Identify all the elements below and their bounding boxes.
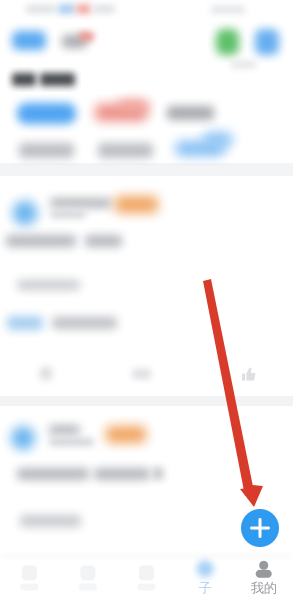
button[interactable]: Messages (59, 556, 117, 600)
button[interactable]: Compose (241, 509, 279, 547)
staticText: 我的 (251, 580, 277, 596)
button[interactable]: Home (0, 556, 59, 600)
button[interactable]: 子 (176, 556, 234, 600)
staticText: 子 (199, 580, 212, 596)
button[interactable]: Notifications (117, 556, 176, 600)
button[interactable]: 我的 (234, 556, 293, 600)
